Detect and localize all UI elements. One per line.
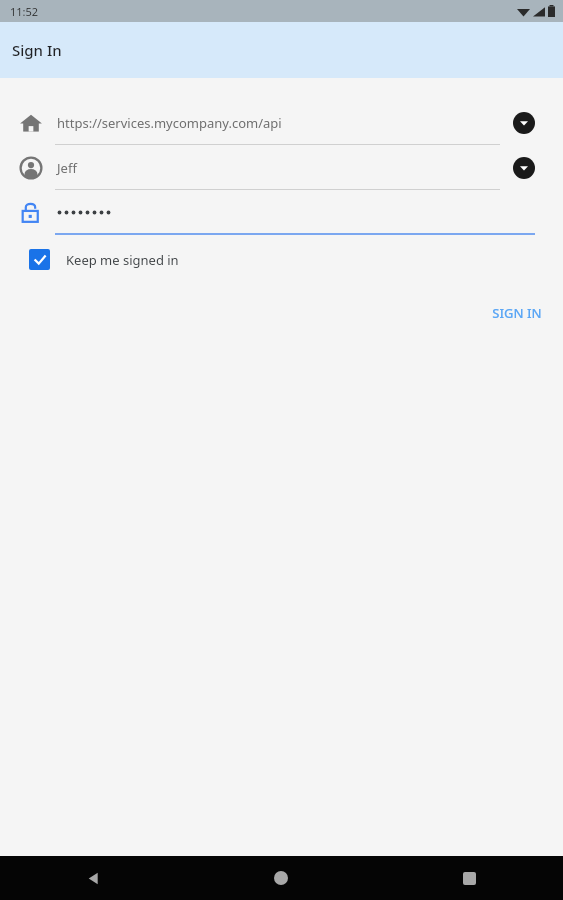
staticText: SIGN IN bbox=[492, 304, 542, 322]
staticText: Sign In bbox=[12, 40, 62, 60]
button[interactable]: Back bbox=[0, 856, 187, 900]
button[interactable]: Home bbox=[187, 856, 375, 900]
staticText: Keep me signed in bbox=[66, 251, 179, 269]
button[interactable]: Show suggestions bbox=[513, 157, 535, 179]
button[interactable]: SIGN IN bbox=[482, 299, 552, 327]
staticText: https://services.mycompany.com/api bbox=[57, 114, 282, 132]
button[interactable]: Keep me signed in bbox=[29, 249, 179, 270]
button[interactable]: Recent apps bbox=[375, 856, 563, 900]
button[interactable]: Jeff bbox=[57, 159, 490, 177]
staticText: 11:52 bbox=[10, 4, 39, 19]
button[interactable]: https://services.mycompany.com/api bbox=[57, 114, 490, 132]
staticText: Jeff bbox=[57, 159, 77, 177]
button[interactable]: Show suggestions bbox=[513, 112, 535, 134]
button[interactable] bbox=[57, 210, 525, 215]
